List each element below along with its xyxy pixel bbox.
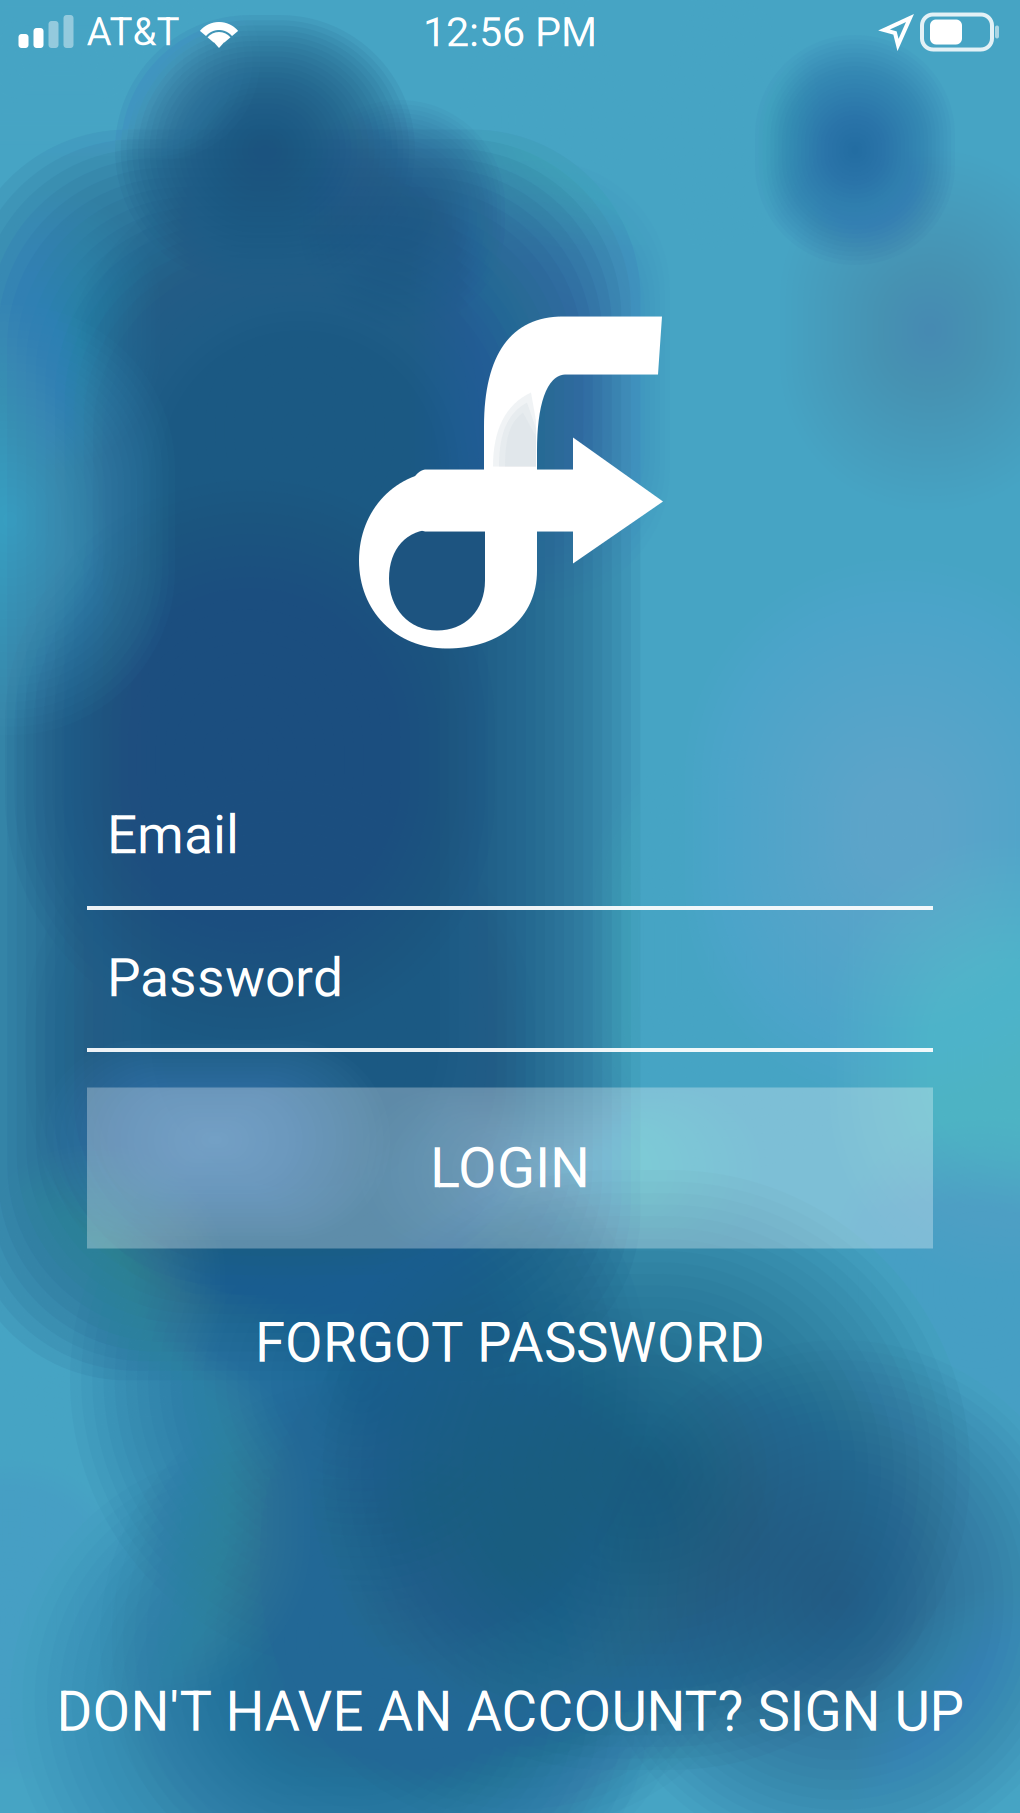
- staticText: Email: [107, 804, 239, 866]
- staticText: LOGIN: [430, 1135, 590, 1201]
- button[interactable]: DON'T HAVE AN ACCOUNT? SIGN UP: [34, 1664, 985, 1760]
- button[interactable]: FORGOT PASSWORD: [229, 1295, 791, 1391]
- staticText: 12:56 PM: [423, 8, 597, 56]
- staticText: FORGOT PASSWORD: [255, 1311, 765, 1375]
- staticText: Password: [107, 947, 343, 1009]
- staticText: DON'T HAVE AN ACCOUNT? SIGN UP: [56, 1680, 963, 1744]
- button[interactable]: LOGIN: [87, 1087, 933, 1248]
- staticText: AT&T: [86, 9, 179, 55]
